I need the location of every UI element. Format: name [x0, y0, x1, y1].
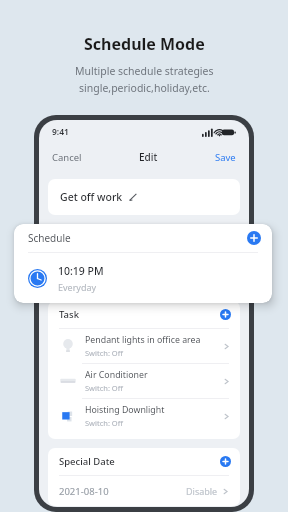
- staticText: Everyday: [58, 281, 97, 293]
- staticText: Disable: [186, 485, 218, 497]
- staticText: Hoisting Downlight: [85, 404, 165, 416]
- staticText: Edit: [139, 150, 158, 164]
- staticText: Switch: Off: [85, 383, 123, 393]
- staticText: Save: [215, 151, 236, 164]
- staticText: Schedule: [28, 231, 71, 245]
- button[interactable]: Air Conditioner: [59, 364, 230, 398]
- button[interactable]: Pendant lights in office area: [59, 329, 230, 363]
- staticText: Special Date: [59, 455, 115, 468]
- staticText: Switch: Off: [85, 348, 123, 358]
- button[interactable]: 10:19 PM: [28, 253, 260, 303]
- staticText: Cancel: [52, 151, 82, 164]
- staticText: Multiple schedule strategies: [75, 64, 214, 78]
- staticText: Air Conditioner: [85, 369, 148, 381]
- staticText: 9:41: [52, 126, 69, 138]
- staticText: 10:19 PM: [58, 264, 104, 278]
- button[interactable]: 2021-08-10: [59, 476, 229, 506]
- button[interactable]: Add: [247, 231, 261, 245]
- staticText: Schedule Mode: [84, 33, 205, 55]
- button[interactable]: Add: [220, 309, 231, 320]
- button[interactable]: Hoisting Downlight: [59, 399, 230, 433]
- staticText: single,periodic,holiday,etc.: [79, 81, 210, 95]
- button[interactable]: Cancel: [50, 149, 84, 166]
- button[interactable]: Save: [213, 149, 238, 166]
- button[interactable]: Add: [220, 456, 231, 467]
- staticText: Pendant lights in office area: [85, 334, 201, 346]
- staticText: Task: [59, 308, 79, 321]
- staticText: 2021-08-10: [59, 485, 109, 498]
- staticText: Get off work: [60, 190, 123, 204]
- staticText: Switch: Off: [85, 418, 123, 428]
- button[interactable]: Get off work: [48, 179, 240, 215]
